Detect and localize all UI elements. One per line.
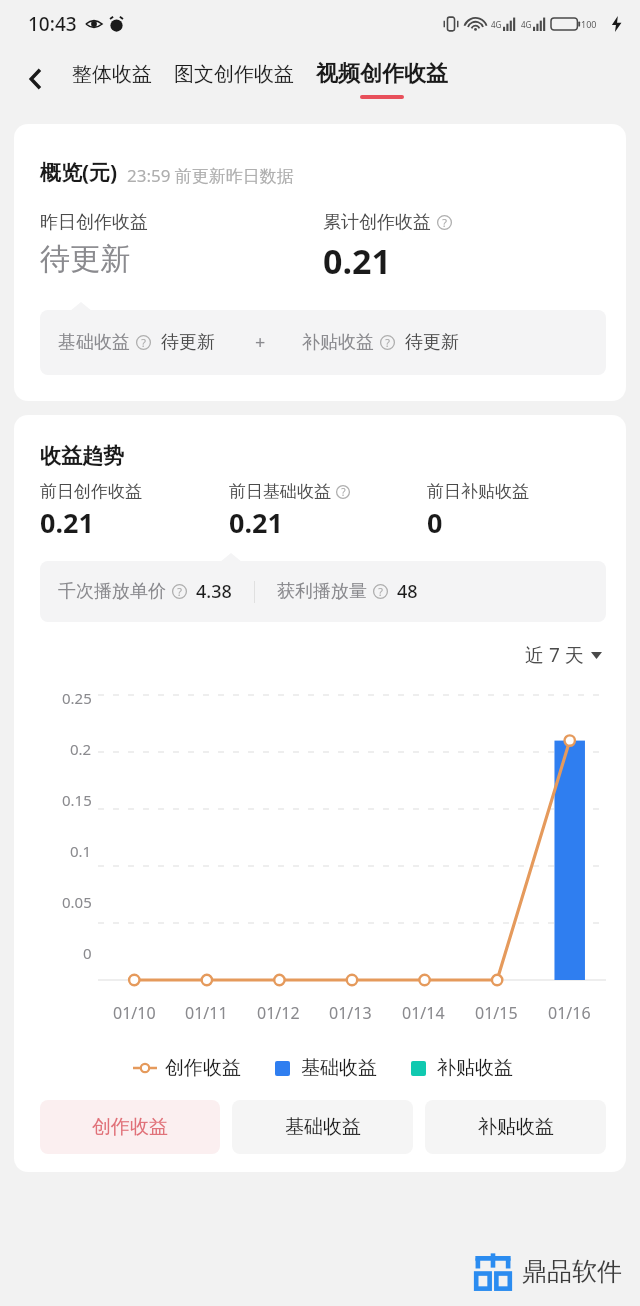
staticText: 10:43 — [28, 11, 77, 37]
staticText: + — [255, 330, 266, 355]
button[interactable]: 图文创作收益 — [174, 58, 294, 102]
staticText: 千次播放单价 — [58, 580, 166, 603]
staticText: 4.38 — [196, 579, 232, 604]
staticText: ? — [378, 584, 383, 599]
staticText: 图文创作收益 — [174, 62, 294, 87]
staticText: 0.21 — [40, 504, 94, 541]
staticText: 0.05 — [62, 892, 92, 912]
staticText: 01/10 — [113, 1002, 156, 1024]
staticText: ? — [385, 335, 390, 350]
staticText: 01/14 — [402, 1002, 445, 1024]
staticText: 获利播放量 — [277, 580, 367, 603]
staticText: 昨日创作收益 — [40, 211, 148, 234]
staticText: 4G — [521, 19, 532, 30]
staticText: 创作收益 — [92, 1115, 168, 1139]
staticText: 前日创作收益 — [40, 481, 142, 502]
button[interactable]: 补贴收益 — [425, 1100, 606, 1154]
button[interactable]: Back — [14, 57, 58, 101]
staticText: 累计创作收益 — [323, 211, 431, 234]
staticText: 0.25 — [62, 688, 92, 708]
staticText: 基础收益 — [58, 331, 130, 354]
staticText: 补贴收益 — [437, 1056, 513, 1080]
staticText: 创作收益 — [165, 1056, 241, 1080]
staticText: 整体收益 — [72, 62, 152, 87]
staticText: 0.21 — [323, 238, 391, 284]
staticText: 01/11 — [185, 1002, 228, 1024]
staticText: 待更新 — [405, 331, 459, 354]
staticText: 近 7 天 — [525, 642, 584, 668]
staticText: 待更新 — [161, 331, 215, 354]
staticText: 01/12 — [257, 1002, 300, 1024]
staticText: 补贴收益 — [302, 331, 374, 354]
button[interactable]: 基础收益 — [232, 1100, 413, 1154]
staticText: 0.21 — [229, 504, 283, 541]
staticText: 0.2 — [70, 739, 92, 759]
staticText: 01/13 — [329, 1002, 372, 1024]
staticText: 48 — [397, 579, 418, 604]
staticText: 前日补贴收益 — [427, 481, 529, 502]
staticText: 01/16 — [548, 1002, 591, 1024]
staticText: 基础收益 — [301, 1056, 377, 1080]
staticText: 补贴收益 — [478, 1115, 554, 1139]
staticText: 100 — [581, 18, 597, 30]
button[interactable]: 创作收益 — [40, 1100, 220, 1154]
staticText: 视频创作收益 — [316, 60, 448, 88]
button[interactable]: 整体收益 — [72, 58, 152, 102]
staticText: 待更新 — [40, 240, 130, 278]
button[interactable]: 补贴收益 — [411, 1056, 513, 1080]
staticText: ? — [177, 584, 182, 599]
staticText: 0 — [83, 943, 92, 963]
staticText: ? — [341, 485, 346, 499]
staticText: 基础收益 — [285, 1115, 361, 1139]
staticText: 收益趋势 — [40, 443, 124, 469]
staticText: 概览(元) — [40, 158, 118, 187]
staticText: 4G — [491, 19, 502, 30]
staticText: 鼎品软件 — [522, 1256, 622, 1287]
staticText: 0 — [427, 504, 443, 541]
staticText: 前日基础收益 — [229, 481, 331, 502]
staticText: 0.1 — [70, 841, 92, 861]
button[interactable]: 基础收益 — [275, 1056, 377, 1080]
button[interactable]: 创作收益 — [133, 1056, 241, 1080]
staticText: ? — [141, 335, 146, 350]
staticText: 23:59 前更新昨日数据 — [127, 164, 294, 187]
button[interactable]: 视频创作收益 — [316, 56, 448, 103]
staticText: 0.15 — [62, 790, 92, 810]
button[interactable]: 近 7 天 — [521, 638, 606, 672]
staticText: ? — [442, 215, 447, 230]
staticText: 01/15 — [475, 1002, 518, 1024]
